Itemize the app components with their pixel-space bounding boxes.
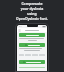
staticText: your dyslexia bbox=[2, 6, 62, 11]
button[interactable]: Action button bbox=[19, 60, 45, 64]
button[interactable]: Action button bbox=[19, 43, 45, 47]
button[interactable]: Action button bbox=[19, 33, 45, 37]
staticText: using bbox=[2, 11, 62, 16]
staticText: OpenDyslexic font. bbox=[2, 16, 62, 21]
button[interactable]: App bar bbox=[17, 28, 47, 32]
staticText: Compensate bbox=[2, 1, 62, 6]
